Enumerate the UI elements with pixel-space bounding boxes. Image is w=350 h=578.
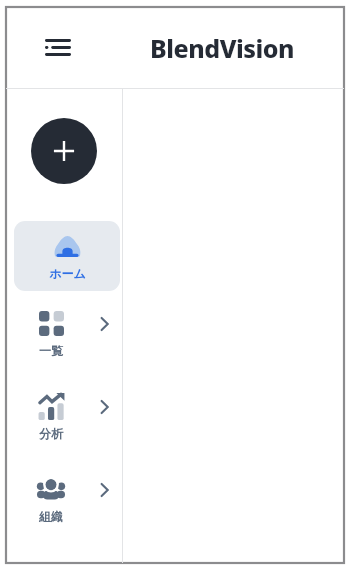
button[interactable]: 一覧 (14, 298, 120, 368)
button[interactable]: Open navigation menu (36, 25, 80, 69)
staticText: ホーム (49, 266, 86, 281)
button[interactable]: 分析 (14, 381, 120, 451)
button[interactable]: Create new (31, 118, 97, 184)
button[interactable]: ホーム (14, 221, 120, 291)
staticText: 組織 (39, 509, 63, 524)
staticText: 一覧 (39, 343, 63, 358)
staticText: BlendVision (134, 31, 310, 65)
button[interactable]: 組織 (14, 464, 120, 534)
staticText: 分析 (39, 426, 63, 441)
